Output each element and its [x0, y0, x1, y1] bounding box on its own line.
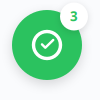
button[interactable]: 3 notifications — [60, 2, 88, 30]
staticText: 3 — [70, 7, 78, 25]
